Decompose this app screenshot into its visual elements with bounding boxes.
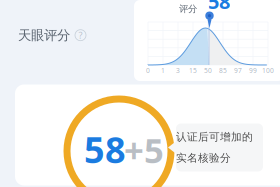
staticText: 天眼评分 xyxy=(18,27,70,43)
staticText: +5 xyxy=(124,127,164,173)
staticText: 0 xyxy=(146,66,150,75)
button[interactable]: 天眼评分 xyxy=(18,27,86,43)
staticText: 评分 xyxy=(179,3,197,15)
staticText: 97 xyxy=(234,66,242,75)
staticText: 58 xyxy=(208,0,230,15)
staticText: 100 xyxy=(262,66,274,75)
staticText: 15 xyxy=(189,66,197,75)
staticText: 58 xyxy=(84,125,126,173)
staticText: 实名核验分 xyxy=(176,151,231,165)
staticText: 50 xyxy=(204,66,212,75)
staticText: 99 xyxy=(249,66,257,75)
staticText: ? xyxy=(78,29,82,41)
staticText: 1 xyxy=(161,66,165,75)
staticText: 认证后可增加的 xyxy=(176,130,253,143)
staticText: 3 xyxy=(176,66,180,75)
staticText: 85 xyxy=(219,66,227,75)
